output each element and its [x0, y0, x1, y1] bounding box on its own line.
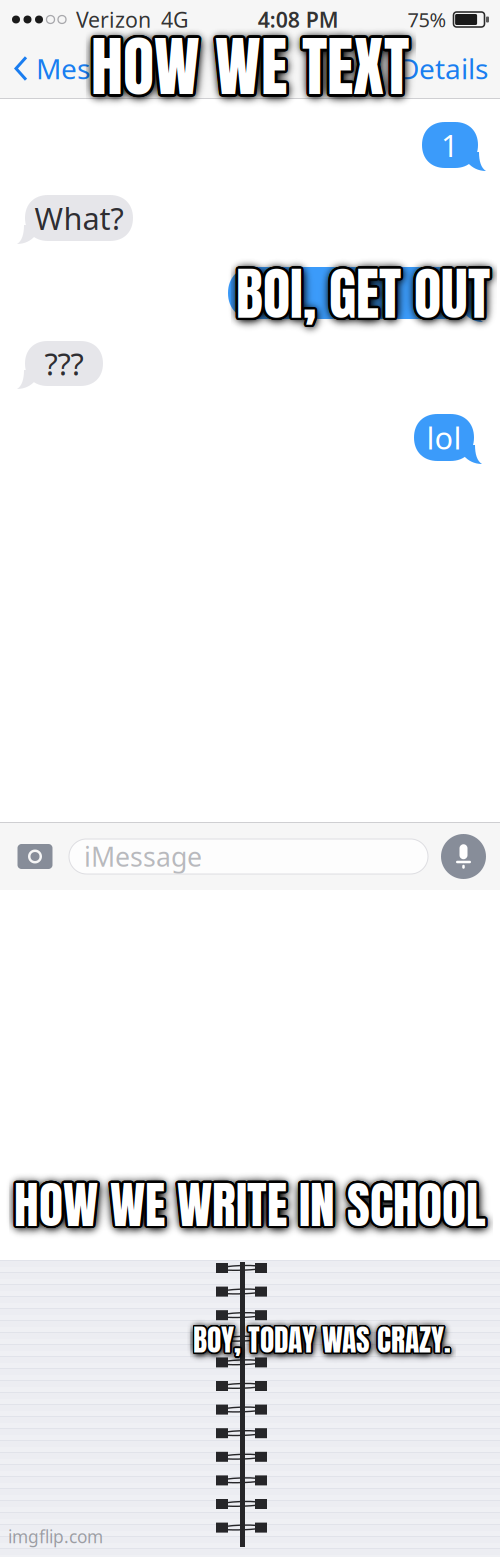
staticText: 4:08 PM [258, 5, 339, 34]
staticText: BOI, GET OUT [236, 251, 490, 335]
staticText: ??? [44, 343, 83, 384]
button[interactable]: Record audio [441, 834, 486, 879]
staticText: BOY, TODAY WAS CRAZY. [193, 1319, 451, 1363]
staticText: HOW WE WRITE IN SCHOOL [13, 1169, 485, 1243]
staticText: HOW WE TEXT [92, 21, 410, 118]
staticText: BOY, TODAY WAS CRAZY. [193, 1319, 451, 1363]
staticText: BOY, TODAY WAS CRAZY. [192, 1319, 450, 1363]
staticText: BOI, GET OUT [235, 254, 489, 338]
staticText: HOW WE WRITE IN SCHOOL [14, 1170, 486, 1244]
staticText: BOI, GET OUT [237, 250, 491, 334]
staticText: HOW WE TEXT [92, 17, 410, 113]
staticText: BOI, GET OUT [234, 250, 488, 334]
staticText: HOW WE TEXT [92, 18, 410, 114]
staticText: HOW WE WRITE IN SCHOOL [12, 1168, 484, 1243]
staticText: 75% [407, 6, 446, 33]
staticText: 4G [161, 5, 189, 34]
staticText: HOW WE TEXT [91, 20, 409, 116]
staticText: HOW WE TEXT [93, 21, 411, 117]
staticText: BOI, GET OUT [235, 251, 489, 336]
staticText: BOI, GET OUT [235, 250, 489, 334]
staticText: HOW WE WRITE IN SCHOOL [12, 1169, 484, 1244]
staticText: BOY, TODAY WAS CRAZY. [193, 1318, 451, 1362]
staticText: HOW WE TEXT [90, 18, 408, 114]
staticText: BOI, GET OUT [235, 251, 489, 335]
staticText: HOW WE WRITE IN SCHOOL [15, 1167, 487, 1241]
staticText: HOW WE TEXT [91, 17, 409, 114]
staticText: BOY, TODAY WAS CRAZY. [192, 1318, 450, 1362]
staticText: HOW WE TEXT [88, 18, 406, 114]
staticText: BOI, GET OUT [238, 252, 492, 336]
staticText: HOW WE TEXT [92, 19, 410, 116]
staticText: BOI, GET OUT [237, 252, 491, 337]
staticText: BOI, GET OUT [236, 252, 490, 336]
staticText: HOW WE TEXT [91, 20, 409, 116]
staticText: BOI, GET OUT [237, 249, 491, 334]
staticText: BOI, GET OUT [236, 250, 490, 335]
staticText: HOW WE TEXT [91, 21, 409, 118]
staticText: BOI, GET OUT [235, 251, 489, 335]
staticText: BOI, GET OUT [234, 252, 488, 337]
staticText: HOW WE TEXT [90, 20, 408, 116]
staticText: HOW WE TEXT [90, 21, 408, 117]
staticText: HOW WE WRITE IN SCHOOL [16, 1168, 488, 1243]
staticText: HOW WE WRITE IN SCHOOL [14, 1167, 486, 1241]
staticText: BOY, TODAY WAS CRAZY. [193, 1317, 451, 1361]
staticText: BOY, TODAY WAS CRAZY. [193, 1319, 451, 1363]
staticText: BOY, TODAY WAS CRAZY. [192, 1317, 450, 1362]
staticText: HOW WE WRITE IN SCHOOL [15, 1167, 487, 1242]
staticText: HOW WE TEXT [88, 19, 406, 115]
staticText: HOW WE WRITE IN SCHOOL [12, 1167, 484, 1241]
staticText: HOW WE WRITE IN SCHOOL [14, 1169, 486, 1243]
staticText: HOW WE WRITE IN SCHOOL [15, 1170, 487, 1244]
staticText: HOW WE TEXT [90, 18, 408, 115]
staticText: HOW WE TEXT [90, 19, 408, 115]
staticText: BOY, TODAY WAS CRAZY. [193, 1318, 451, 1362]
staticText: BOI, GET OUT [237, 253, 491, 337]
staticText: BOI, GET OUT [238, 253, 492, 337]
button[interactable]: Details [399, 50, 500, 87]
staticText: HOW WE WRITE IN SCHOOL [15, 1166, 487, 1240]
staticText: HOW WE WRITE IN SCHOOL [13, 1166, 485, 1240]
staticText: HOW WE TEXT [90, 21, 408, 118]
staticText: HOW WE TEXT [90, 19, 408, 115]
staticText: BOY, TODAY WAS CRAZY. [192, 1317, 450, 1361]
staticText: HOW WE WRITE IN SCHOOL [16, 1168, 488, 1242]
staticText: BOI, GET OUT [237, 252, 491, 336]
staticText: lol [426, 417, 461, 458]
staticText: BOY, TODAY WAS CRAZY. [192, 1318, 450, 1362]
staticText: HOW WE WRITE IN SCHOOL [15, 1170, 487, 1244]
staticText: HOW WE WRITE IN SCHOOL [14, 1169, 486, 1243]
staticText: BOI, GET OUT [236, 251, 490, 335]
staticText: HOW WE TEXT [90, 20, 408, 116]
staticText: HOW WE WRITE IN SCHOOL [15, 1169, 487, 1243]
staticText: HOW WE WRITE IN SCHOOL [12, 1169, 484, 1243]
staticText: HOW WE WRITE IN SCHOOL [13, 1170, 485, 1244]
staticText: HOW WE WRITE IN SCHOOL [13, 1167, 485, 1241]
button[interactable]: Camera [14, 835, 56, 877]
staticText: HOW WE WRITE IN SCHOOL [12, 1166, 484, 1241]
staticText: BOY, TODAY WAS CRAZY. [194, 1318, 452, 1362]
staticText: HOW WE WRITE IN SCHOOL [16, 1167, 488, 1242]
staticText: HOW WE WRITE IN SCHOOL [16, 1167, 488, 1241]
staticText: BOI, GET OUT [236, 254, 490, 338]
staticText: BOY, TODAY WAS CRAZY. [193, 1317, 451, 1361]
staticText: HOW WE WRITE IN SCHOOL [13, 1169, 485, 1243]
staticText: BOY, TODAY WAS CRAZY. [193, 1317, 451, 1361]
staticText: HOW WE WRITE IN SCHOOL [13, 1167, 485, 1242]
staticText: HOW WE TEXT [91, 17, 409, 114]
staticText: HOW WE WRITE IN SCHOOL [16, 1166, 488, 1241]
staticText: HOW WE TEXT [91, 16, 409, 112]
staticText: HOW WE WRITE IN SCHOOL [16, 1169, 488, 1243]
staticText: BOY, TODAY WAS CRAZY. [193, 1317, 451, 1361]
staticText: BOY, TODAY WAS CRAZY. [194, 1318, 452, 1363]
staticText: BOI, GET OUT [236, 253, 490, 337]
staticText: BOY, TODAY WAS CRAZY. [192, 1319, 450, 1363]
staticText: HOW WE WRITE IN SCHOOL [12, 1168, 484, 1242]
staticText: BOI, GET OUT [235, 252, 489, 336]
staticText: HOW WE TEXT [94, 19, 412, 115]
staticText: HOW WE TEXT [93, 17, 411, 113]
staticText: BOY, TODAY WAS CRAZY. [194, 1317, 452, 1361]
button[interactable]: Mes [0, 50, 90, 87]
staticText: BOI, GET OUT [236, 253, 490, 337]
